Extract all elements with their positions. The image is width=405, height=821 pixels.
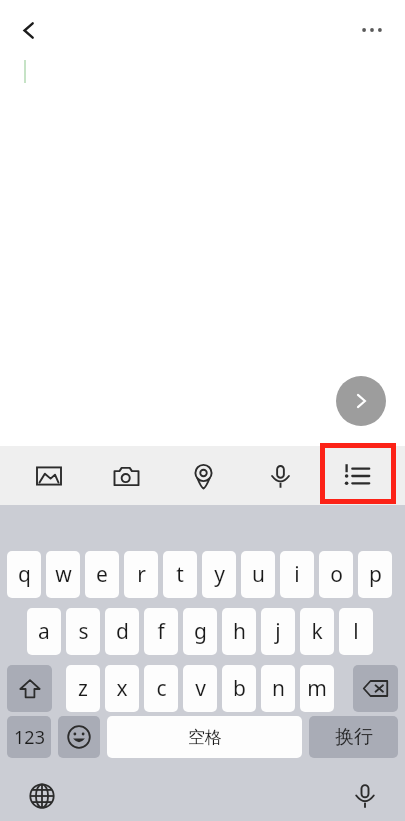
staticText: l	[353, 617, 359, 646]
button[interactable]: Voice input	[347, 778, 383, 814]
button[interactable]: Camera	[100, 450, 152, 502]
staticText: h	[233, 617, 246, 646]
staticText: w	[55, 560, 72, 589]
button[interactable]: Emoji	[58, 716, 100, 758]
staticText: i	[294, 560, 300, 589]
button[interactable]: Back	[9, 11, 47, 49]
button[interactable]: w	[46, 551, 80, 598]
staticText: v	[195, 674, 206, 703]
staticText: g	[194, 617, 207, 646]
staticText: d	[116, 617, 129, 646]
button[interactable]: 空格	[107, 716, 302, 758]
staticText: x	[116, 674, 128, 703]
button[interactable]: a	[27, 608, 61, 655]
staticText: u	[252, 560, 265, 589]
staticText: q	[18, 560, 31, 589]
button[interactable]: More options	[353, 11, 391, 49]
staticText: 123	[14, 725, 45, 750]
staticText: z	[78, 674, 88, 703]
staticText: 空格	[188, 727, 222, 748]
button[interactable]: Send	[336, 376, 386, 426]
button[interactable]: q	[7, 551, 41, 598]
button[interactable]: k	[300, 608, 334, 655]
button[interactable]: Location	[177, 450, 229, 502]
button[interactable]: h	[222, 608, 256, 655]
button[interactable]: Insert image	[23, 450, 75, 502]
button[interactable]: c	[144, 665, 178, 712]
button[interactable]: s	[66, 608, 100, 655]
button[interactable]: Voice input	[254, 450, 306, 502]
staticText: p	[369, 560, 382, 589]
staticText: s	[78, 617, 89, 646]
button[interactable]: l	[339, 608, 373, 655]
staticText: e	[96, 560, 108, 589]
button[interactable]: z	[66, 665, 100, 712]
button[interactable]: v	[183, 665, 217, 712]
button[interactable]: x	[105, 665, 139, 712]
button[interactable]: Shift	[7, 665, 52, 712]
staticText: a	[38, 617, 50, 646]
button[interactable]: List formatting	[331, 450, 383, 502]
button[interactable]: 123	[7, 716, 51, 758]
staticText: b	[233, 674, 246, 703]
staticText: 换行	[335, 725, 373, 749]
staticText: m	[307, 674, 327, 703]
button[interactable]: t	[163, 551, 197, 598]
button[interactable]: b	[222, 665, 256, 712]
button[interactable]: y	[202, 551, 236, 598]
button[interactable]: j	[261, 608, 295, 655]
button[interactable]: i	[280, 551, 314, 598]
button[interactable]: Backspace	[353, 665, 398, 712]
button[interactable]: n	[261, 665, 295, 712]
button[interactable]: e	[85, 551, 119, 598]
button[interactable]: u	[241, 551, 275, 598]
button[interactable]: o	[319, 551, 353, 598]
button[interactable]: r	[124, 551, 158, 598]
staticText: k	[311, 617, 323, 646]
staticText: f	[157, 617, 165, 646]
button[interactable]: p	[358, 551, 392, 598]
button[interactable]: g	[183, 608, 217, 655]
button[interactable]: Switch language	[24, 778, 60, 814]
staticText: c	[156, 674, 167, 703]
button[interactable]: f	[144, 608, 178, 655]
staticText: j	[275, 617, 281, 646]
button[interactable]: 换行	[309, 716, 398, 758]
button[interactable]: m	[300, 665, 334, 712]
button[interactable]: d	[105, 608, 139, 655]
staticText: t	[176, 560, 184, 589]
staticText: n	[272, 674, 285, 703]
staticText: y	[214, 560, 225, 589]
staticText: r	[137, 560, 146, 589]
staticText: o	[330, 560, 343, 589]
